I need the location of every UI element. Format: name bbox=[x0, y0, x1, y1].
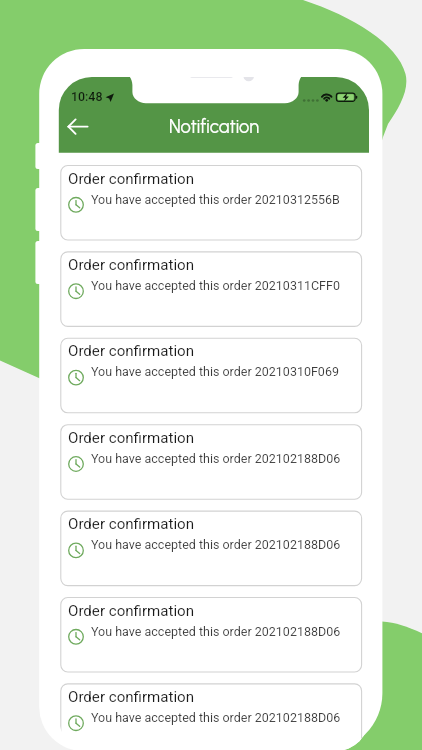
staticText: You have accepted this order 202102188D0… bbox=[91, 537, 341, 552]
staticText: Order confirmation bbox=[68, 429, 195, 447]
button[interactable]: Order confirmation bbox=[61, 166, 362, 241]
staticText: You have accepted this order 20210310F06… bbox=[91, 364, 339, 379]
staticText: Order confirmation bbox=[68, 342, 195, 360]
button[interactable]: Order confirmation bbox=[61, 252, 362, 327]
button[interactable]: Back bbox=[62, 111, 94, 143]
staticText: Notification bbox=[59, 116, 369, 138]
staticText: You have accepted this order 202102188D0… bbox=[91, 624, 341, 639]
button[interactable]: Order confirmation bbox=[61, 684, 362, 750]
staticText: Order confirmation bbox=[68, 688, 195, 706]
staticText: You have accepted this order 20210312556… bbox=[91, 192, 340, 207]
button: Notification bbox=[59, 109, 369, 145]
staticText: 10:48 bbox=[71, 89, 103, 104]
staticText: Order confirmation bbox=[68, 602, 195, 620]
staticText: You have accepted this order 202102188D0… bbox=[91, 451, 341, 466]
staticText: Order confirmation bbox=[68, 170, 195, 188]
button[interactable]: Order confirmation bbox=[61, 425, 362, 500]
staticText: You have accepted this order 20210311CFF… bbox=[91, 278, 340, 293]
staticText: Order confirmation bbox=[68, 515, 195, 533]
button[interactable]: Order confirmation bbox=[61, 511, 362, 586]
button[interactable]: Order confirmation bbox=[61, 598, 362, 673]
staticText: Order confirmation bbox=[68, 256, 195, 274]
staticText: You have accepted this order 202102188D0… bbox=[91, 710, 341, 725]
button[interactable]: Order confirmation bbox=[61, 338, 362, 413]
